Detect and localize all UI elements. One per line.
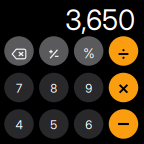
staticText: 9	[85, 81, 92, 96]
staticText: 4	[15, 118, 22, 132]
button[interactable]: 7	[4, 73, 34, 102]
button[interactable]: 4	[4, 109, 34, 139]
button[interactable]: Divide	[109, 36, 138, 66]
button[interactable]: Plus minus	[39, 36, 69, 66]
button[interactable]: 5	[39, 109, 69, 139]
button[interactable]: Minus	[109, 109, 138, 139]
staticText: 3,650	[65, 3, 135, 37]
staticText: 6	[85, 118, 92, 132]
button[interactable]: 6	[74, 109, 103, 139]
button[interactable]: Delete	[4, 36, 34, 66]
staticText: %	[83, 45, 94, 61]
button[interactable]: 8	[39, 73, 69, 102]
button[interactable]: %	[74, 36, 103, 66]
staticText: 5	[50, 118, 57, 132]
staticText: 8	[50, 81, 57, 96]
staticText: 7	[16, 81, 22, 96]
button[interactable]: Multiply	[109, 73, 138, 102]
button[interactable]: 9	[74, 73, 103, 102]
